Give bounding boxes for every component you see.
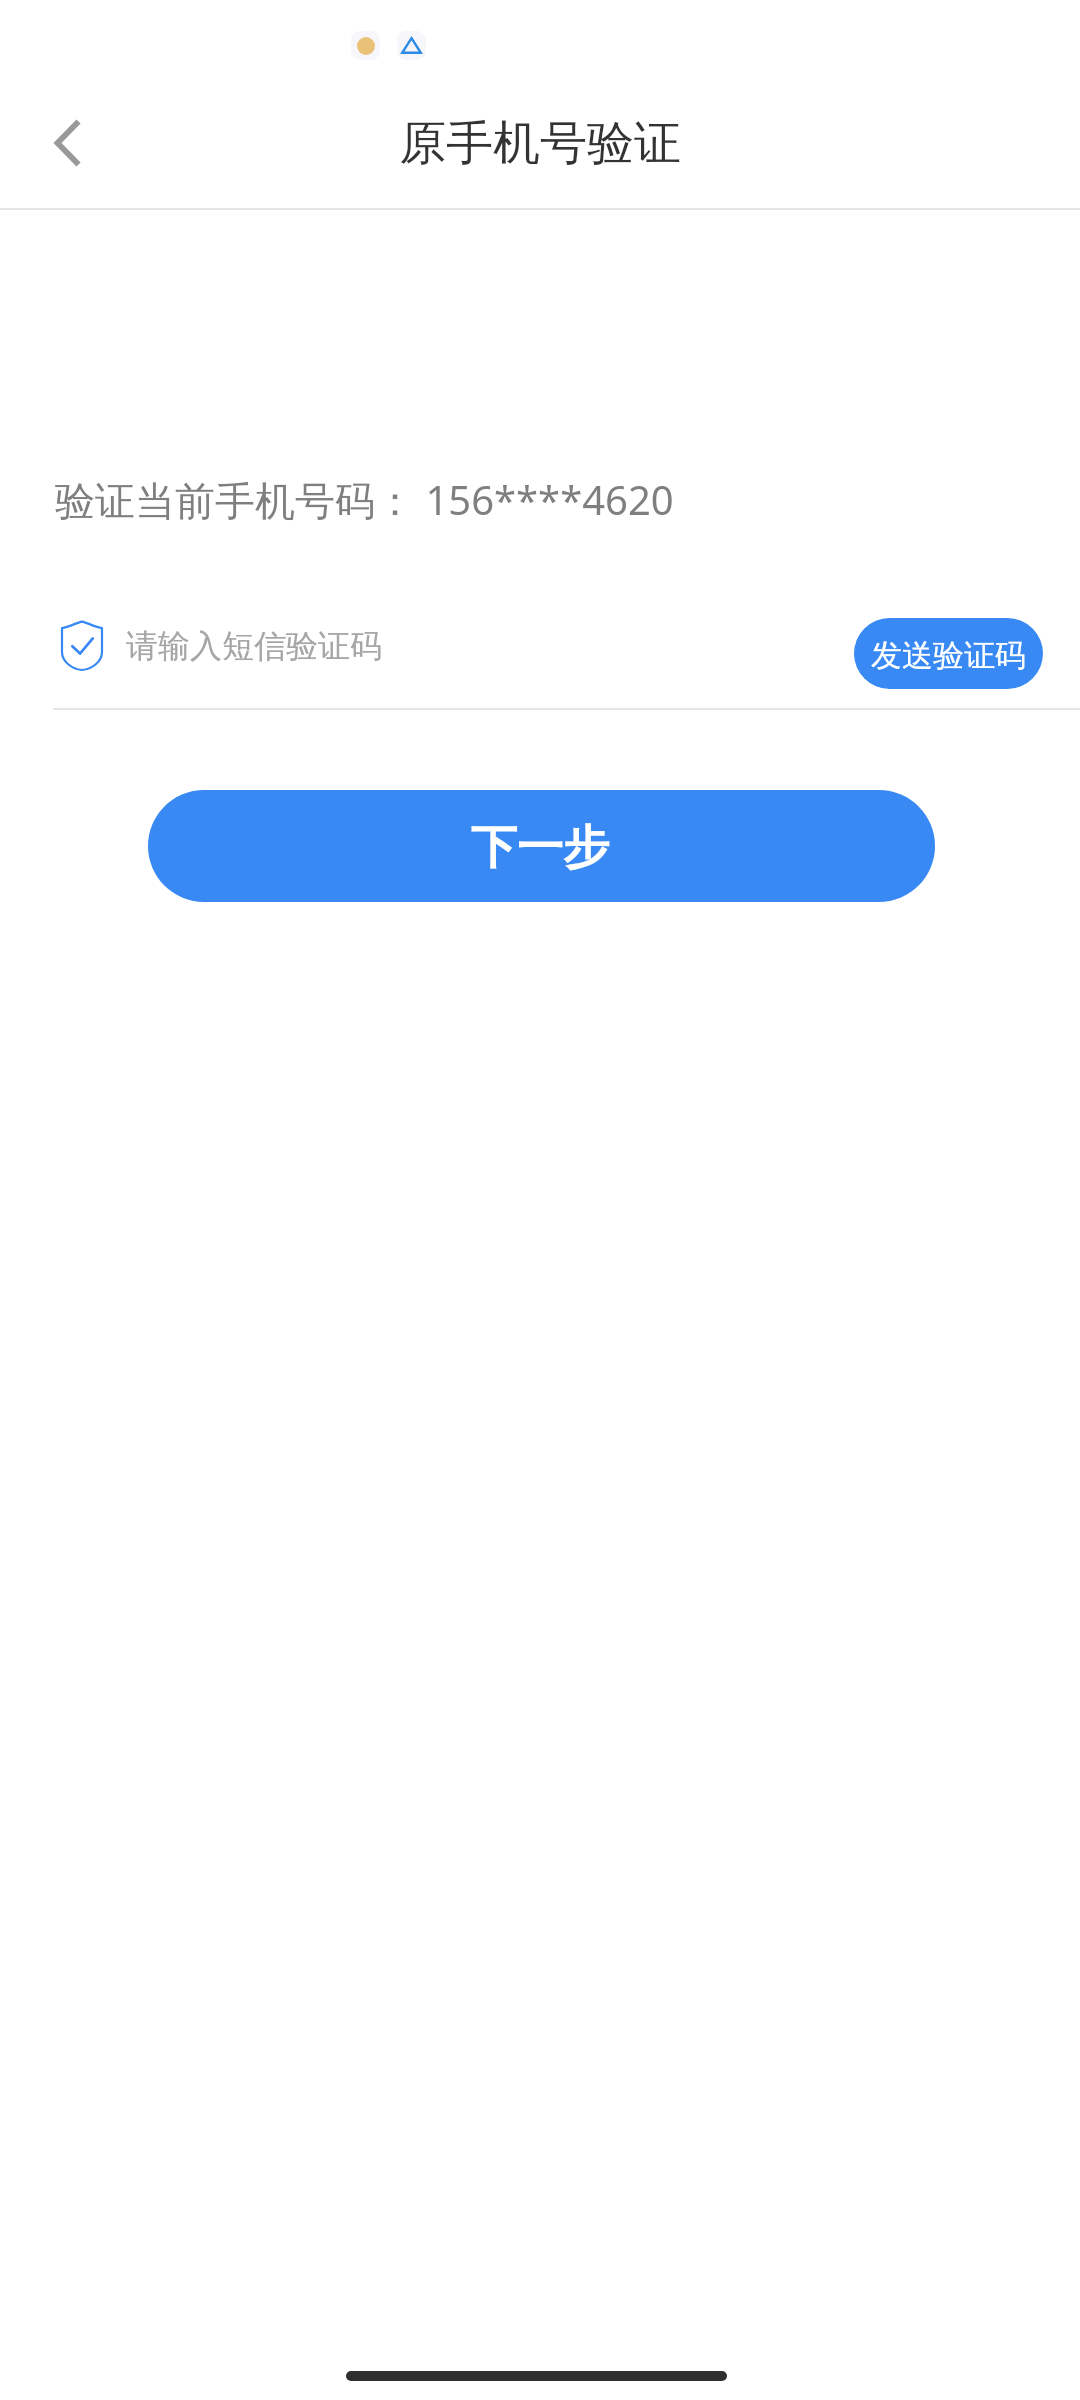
staticText: 发送验证码 xyxy=(871,636,1026,675)
staticText: 请输入短信验证码 xyxy=(126,626,382,666)
staticText: 原手机号验证 xyxy=(399,114,681,173)
staticText: 下一步 xyxy=(471,819,609,877)
button[interactable]: Back xyxy=(23,99,111,187)
button[interactable]: 请输入短信验证码 xyxy=(118,599,838,691)
staticText: 验证当前手机号码： 156****4620 xyxy=(55,472,674,527)
button[interactable]: 下一步 xyxy=(148,790,935,902)
button[interactable]: 发送验证码 xyxy=(854,618,1043,689)
